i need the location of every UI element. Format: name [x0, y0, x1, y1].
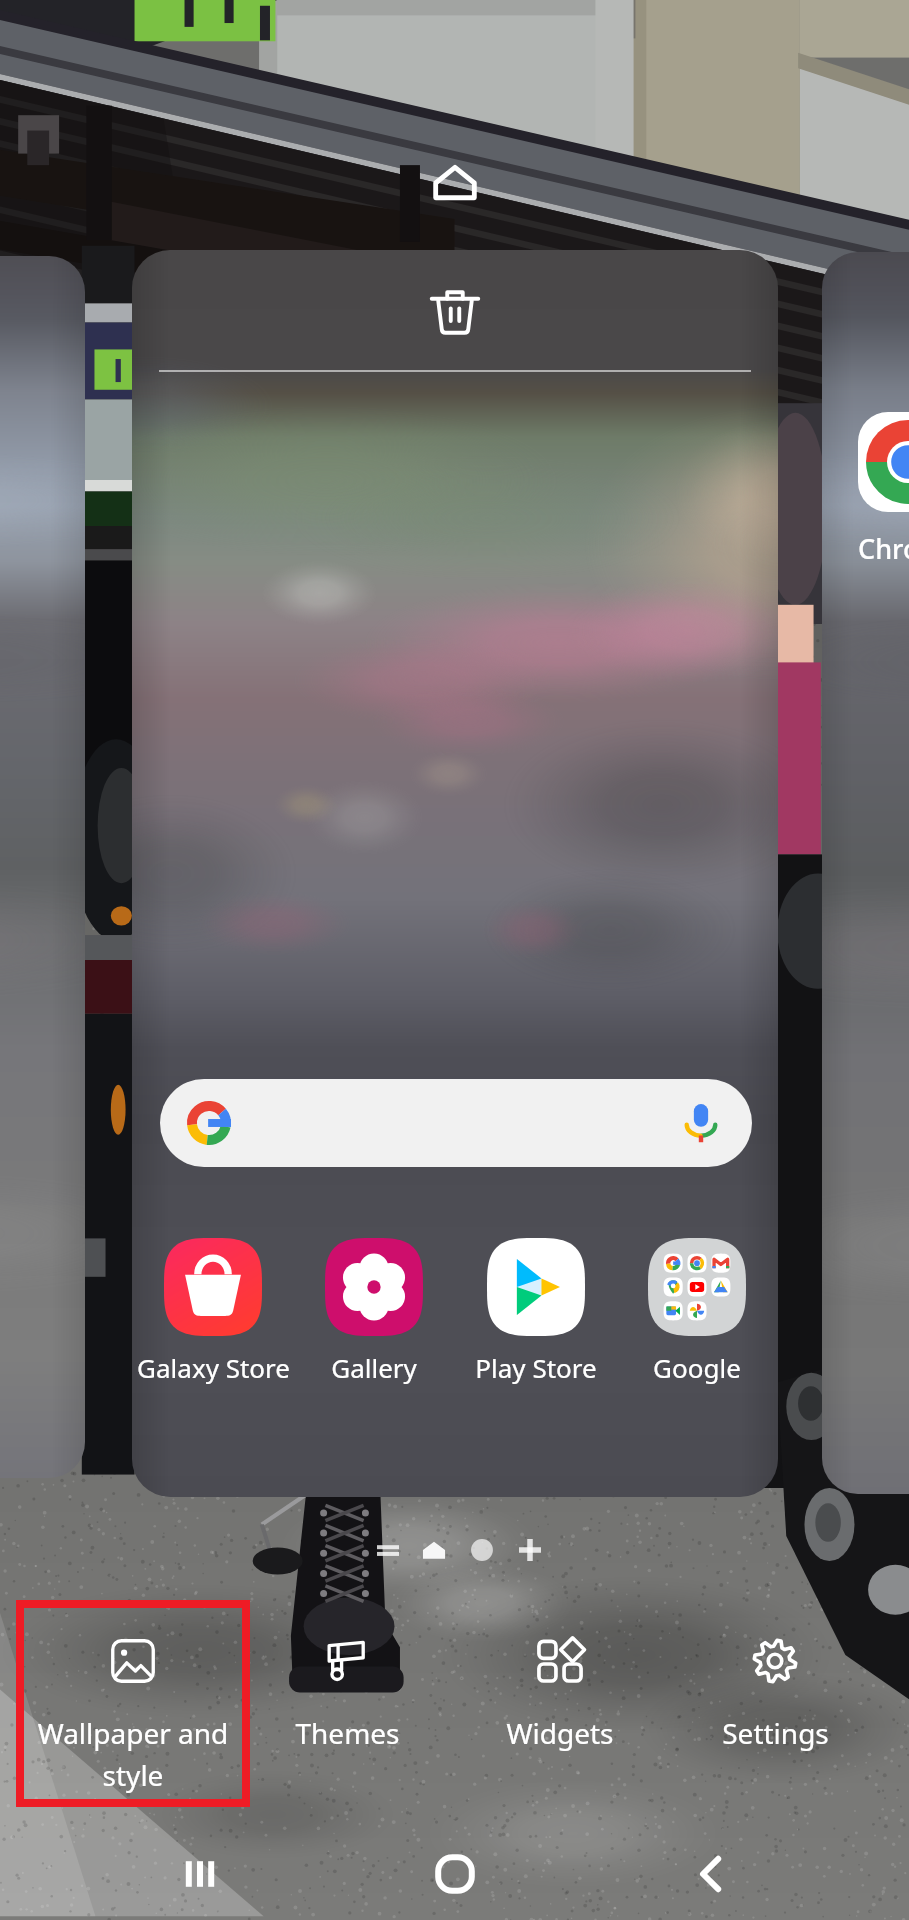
staticText: Settings	[722, 1714, 829, 1752]
button[interactable]: Widgets	[450, 1604, 670, 1784]
button[interactable]: Previous home screen page	[0, 432, 28, 1432]
button[interactable]: Back	[683, 1846, 739, 1902]
button[interactable]: Home screen preview	[132, 250, 778, 1497]
staticText: Play Store	[475, 1350, 597, 1385]
button[interactable]: Google	[617, 1238, 777, 1385]
button[interactable]: Wallpaper and style	[20, 1604, 246, 1803]
staticText: Wallpaper and style	[20, 1714, 246, 1794]
button[interactable]: Home screen page	[0, 256, 85, 1478]
button[interactable]: Settings	[665, 1604, 885, 1784]
button[interactable]: Next home screen page	[822, 252, 909, 1494]
button[interactable]: Home	[427, 1846, 483, 1902]
button[interactable]: Galaxy Store	[133, 1238, 293, 1385]
staticText: Galaxy Store	[137, 1350, 290, 1385]
staticText: Google	[653, 1350, 741, 1385]
button[interactable]: Themes	[237, 1604, 457, 1784]
button[interactable]: Gallery	[294, 1238, 454, 1385]
staticText: Themes	[295, 1714, 400, 1752]
staticText: Gallery	[331, 1350, 417, 1385]
staticText: Widgets	[506, 1714, 614, 1752]
button[interactable]: Remove page	[412, 270, 498, 356]
button[interactable]: Play Store	[456, 1238, 616, 1385]
button[interactable]: Google search	[160, 1079, 752, 1167]
button[interactable]: Home screen	[424, 152, 486, 214]
button[interactable]: Recent apps	[172, 1846, 228, 1902]
staticText: Chro	[858, 530, 909, 567]
